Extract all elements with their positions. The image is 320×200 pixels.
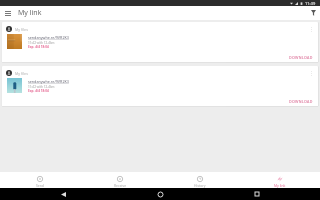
staticText: My files <box>15 27 28 32</box>
button[interactable]: Recent apps <box>252 189 262 199</box>
button[interactable]: History <box>160 172 240 188</box>
button[interactable]: Filter <box>306 6 320 20</box>
staticText: My files <box>15 71 28 76</box>
staticText: sendanywhe.re/9VR2K3 <box>28 35 69 40</box>
button[interactable]: More options <box>306 24 317 35</box>
button[interactable]: DOWNLOAD <box>288 98 314 105</box>
staticText: sendanywhe.re/9VR2K3 <box>28 79 69 84</box>
button[interactable]: Send <box>0 172 80 188</box>
staticText: Exp. 4/4 18:04 <box>28 89 49 93</box>
staticText: DOWNLOAD <box>289 55 313 60</box>
button[interactable]: Home <box>155 189 165 199</box>
staticText: Exp. 4/4 18:04 <box>28 45 49 49</box>
button[interactable]: My files <box>2 66 318 106</box>
staticText: Receive <box>114 183 127 188</box>
staticText: My link <box>18 8 42 18</box>
button[interactable]: More options <box>306 68 317 79</box>
button[interactable]: My link <box>240 172 320 188</box>
button[interactable]: My files <box>2 22 318 62</box>
staticText: Send <box>36 183 44 188</box>
button[interactable]: Open navigation menu <box>2 8 13 19</box>
staticText: History <box>194 183 206 188</box>
staticText: 11:42 with 12.4km <box>28 41 55 45</box>
staticText: 11:39 <box>305 1 316 6</box>
button[interactable]: Receive <box>80 172 160 188</box>
staticText: 11:42 with 12.4km <box>28 85 55 89</box>
staticText: DOWNLOAD <box>289 99 313 104</box>
button[interactable]: DOWNLOAD <box>288 54 314 61</box>
staticText: My link <box>274 183 286 188</box>
button[interactable]: Back <box>58 189 68 199</box>
